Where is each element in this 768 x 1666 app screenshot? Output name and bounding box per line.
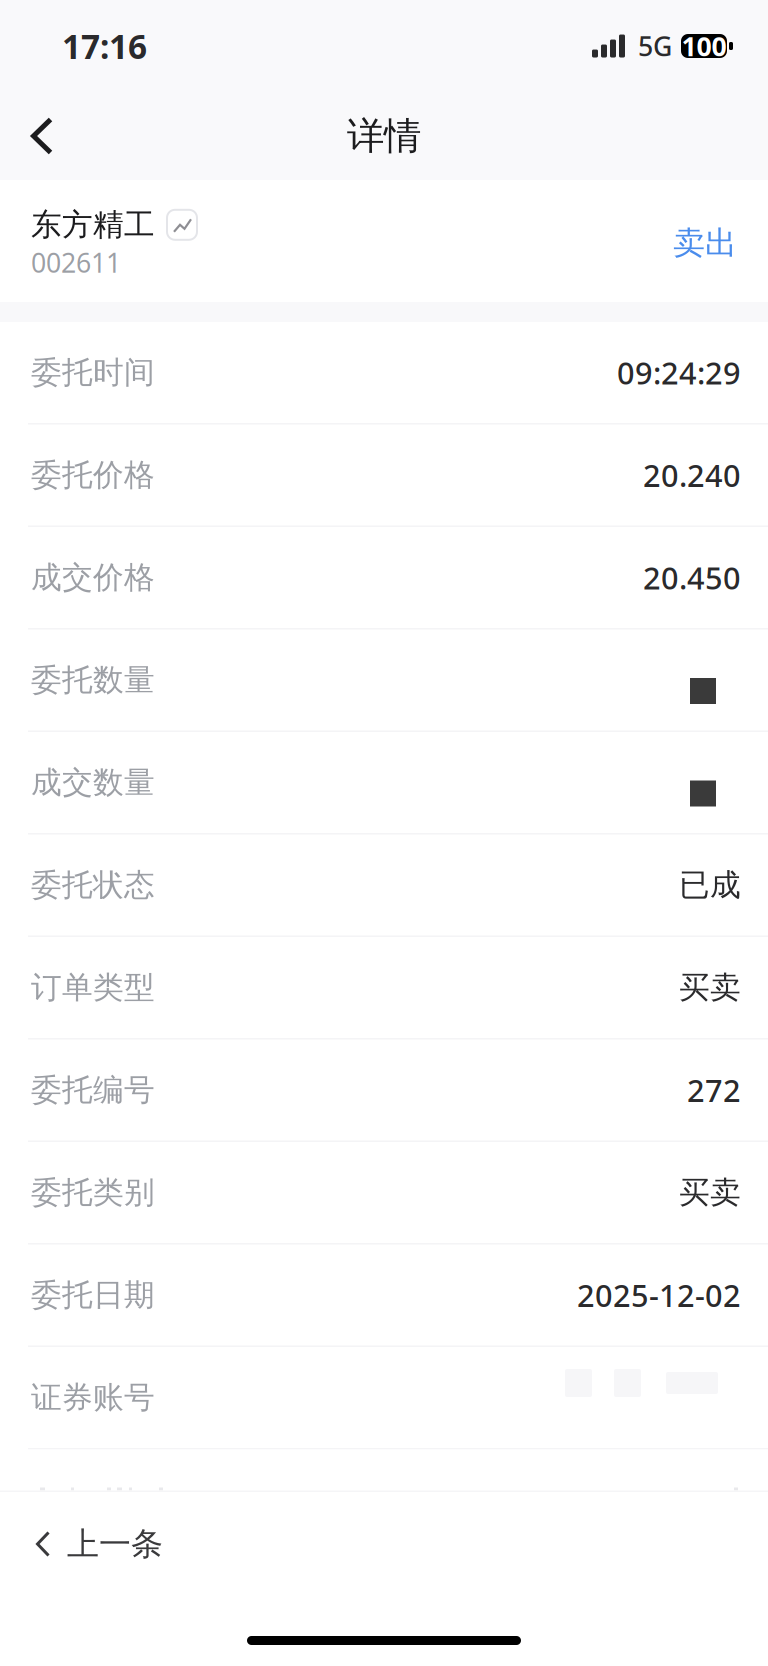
staticText: 2025-12-02 (577, 1275, 741, 1315)
staticText: 上一条 (67, 1524, 163, 1564)
staticText: 5G (638, 28, 672, 64)
staticText: 证券账号 (31, 1379, 155, 1416)
staticText: 订单类型 (31, 969, 155, 1006)
staticText: 20.450 (643, 557, 741, 598)
staticText: 卖出 (673, 223, 737, 263)
staticText: 买卖 (679, 1174, 741, 1211)
staticText: 09:24:29 (617, 352, 741, 393)
staticText: 详情 (347, 113, 421, 159)
staticText: 20.240 (643, 455, 741, 495)
staticText: 东方精工 (31, 206, 155, 244)
button[interactable]: 卖出 (663, 211, 747, 275)
staticText: 委托日期 (31, 1276, 155, 1314)
staticText: 买卖 (679, 969, 741, 1006)
staticText: 成交价格 (31, 559, 155, 596)
staticText: 委托价格 (31, 456, 155, 494)
staticText: 已成 (679, 866, 741, 904)
button[interactable]: Back (0, 92, 81, 180)
staticText: 100 (681, 28, 726, 64)
staticText: 委托状态 (31, 866, 155, 904)
staticText: 002611 (31, 245, 121, 280)
staticText: 委托数量 (31, 661, 155, 699)
staticText: 17:16 (62, 24, 147, 68)
staticText: 272 (687, 1070, 741, 1110)
staticText: 委托编号 (31, 1071, 155, 1109)
staticText: 成交数量 (31, 764, 155, 801)
staticText: 委托类别 (31, 1174, 155, 1211)
button[interactable]: 上一条 (0, 1504, 187, 1584)
staticText: 委托时间 (31, 354, 155, 391)
